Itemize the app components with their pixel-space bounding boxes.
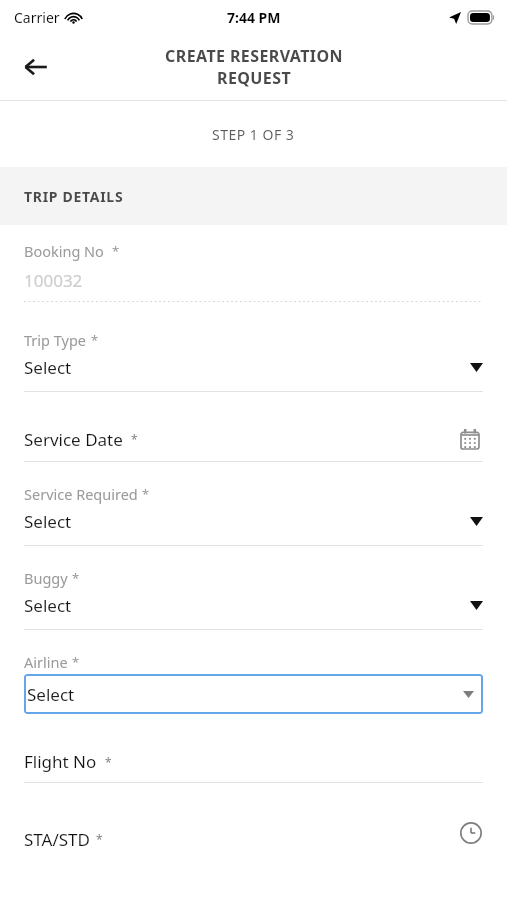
staticText: Flight No [24,750,97,773]
button[interactable]: Service Date [24,426,483,452]
other: Pick date [457,426,483,452]
button[interactable]: Select [24,510,483,533]
staticText: * [105,754,112,770]
staticText: Select [27,683,75,706]
button[interactable]: Select [24,594,483,617]
staticText: 7:44 PM [227,8,281,27]
button[interactable]: STA/STD [24,827,483,851]
button[interactable]: Back [10,41,62,93]
staticText: 100032 [24,269,83,292]
button[interactable]: Select [24,674,483,714]
button[interactable]: Select [24,356,483,379]
staticText: STA/STD [24,828,90,851]
staticText: Airline [24,652,68,672]
staticText: Select [24,510,72,533]
staticText: STEP 1 OF 3 [212,125,295,144]
staticText: * [72,569,80,587]
staticText: * [131,431,138,447]
staticText: CREATE RESERVATION REQUEST [129,45,379,89]
staticText: * [112,242,120,260]
staticText: Select [24,594,72,617]
button[interactable]: Flight No [24,750,483,773]
staticText: Service Date [24,428,123,451]
staticText: * [72,653,80,671]
staticText: Carrier [14,8,60,27]
staticText: Trip Type [24,330,87,350]
staticText: Select [24,356,72,379]
staticText: Service Required [24,484,138,504]
staticText: Buggy [24,568,68,588]
staticText: TRIP DETAILS [24,187,124,206]
other: Pick time [459,821,483,845]
staticText: * [142,485,150,503]
staticText: Booking No [24,241,104,261]
staticText: * [96,831,103,847]
staticText: * [91,331,99,349]
